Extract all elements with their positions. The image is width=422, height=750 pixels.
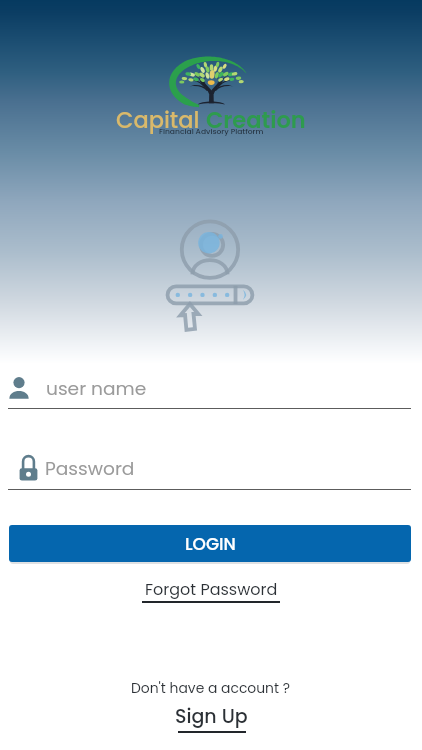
button[interactable]: user name	[8, 374, 411, 402]
staticText: Financial Advisory Platform	[159, 126, 264, 137]
staticText: Sign Up	[175, 703, 248, 730]
staticText: Don't have a account ?	[131, 678, 291, 697]
staticText: Password	[45, 455, 135, 481]
button[interactable]: Forgot Password	[142, 578, 280, 603]
button[interactable]: Sign Up	[175, 703, 248, 733]
staticText: Creation	[206, 104, 306, 135]
button[interactable]: LOGIN	[9, 525, 411, 562]
staticText: user name	[46, 375, 147, 401]
staticText: Capital	[116, 104, 206, 135]
button[interactable]: Password	[19, 453, 411, 483]
staticText: Forgot Password	[145, 578, 278, 600]
staticText: LOGIN	[185, 532, 236, 556]
